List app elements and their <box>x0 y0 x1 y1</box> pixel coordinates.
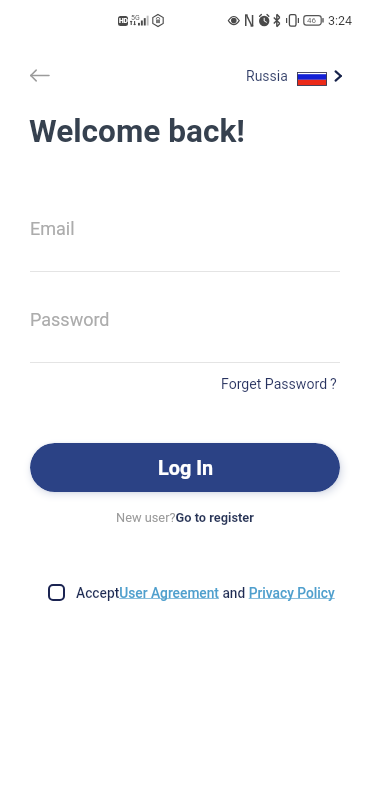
button[interactable]: Email <box>30 208 340 272</box>
button[interactable]: New user?Go to register <box>116 510 254 525</box>
staticText: 46 <box>307 16 316 25</box>
staticText: Email <box>30 218 75 239</box>
button[interactable]: Log In <box>30 443 340 492</box>
button[interactable]: Password <box>30 299 340 363</box>
staticText: Forget Password ? <box>221 376 337 393</box>
staticText: HD <box>119 17 128 25</box>
button[interactable]: AcceptUser Agreement and Privacy Policy <box>76 585 335 601</box>
button[interactable]: Back <box>24 61 54 90</box>
button[interactable]: Russia <box>246 61 343 90</box>
button[interactable]: Forget Password ? <box>221 376 337 393</box>
staticText: Log In <box>158 457 214 480</box>
staticText: 3:24 <box>328 13 353 28</box>
staticText: Welcome back! <box>29 113 245 150</box>
staticText: Russia <box>246 68 288 84</box>
button[interactable]: Accept terms <box>48 584 65 601</box>
staticText: 5G <box>131 14 140 22</box>
staticText: Password <box>30 309 110 330</box>
